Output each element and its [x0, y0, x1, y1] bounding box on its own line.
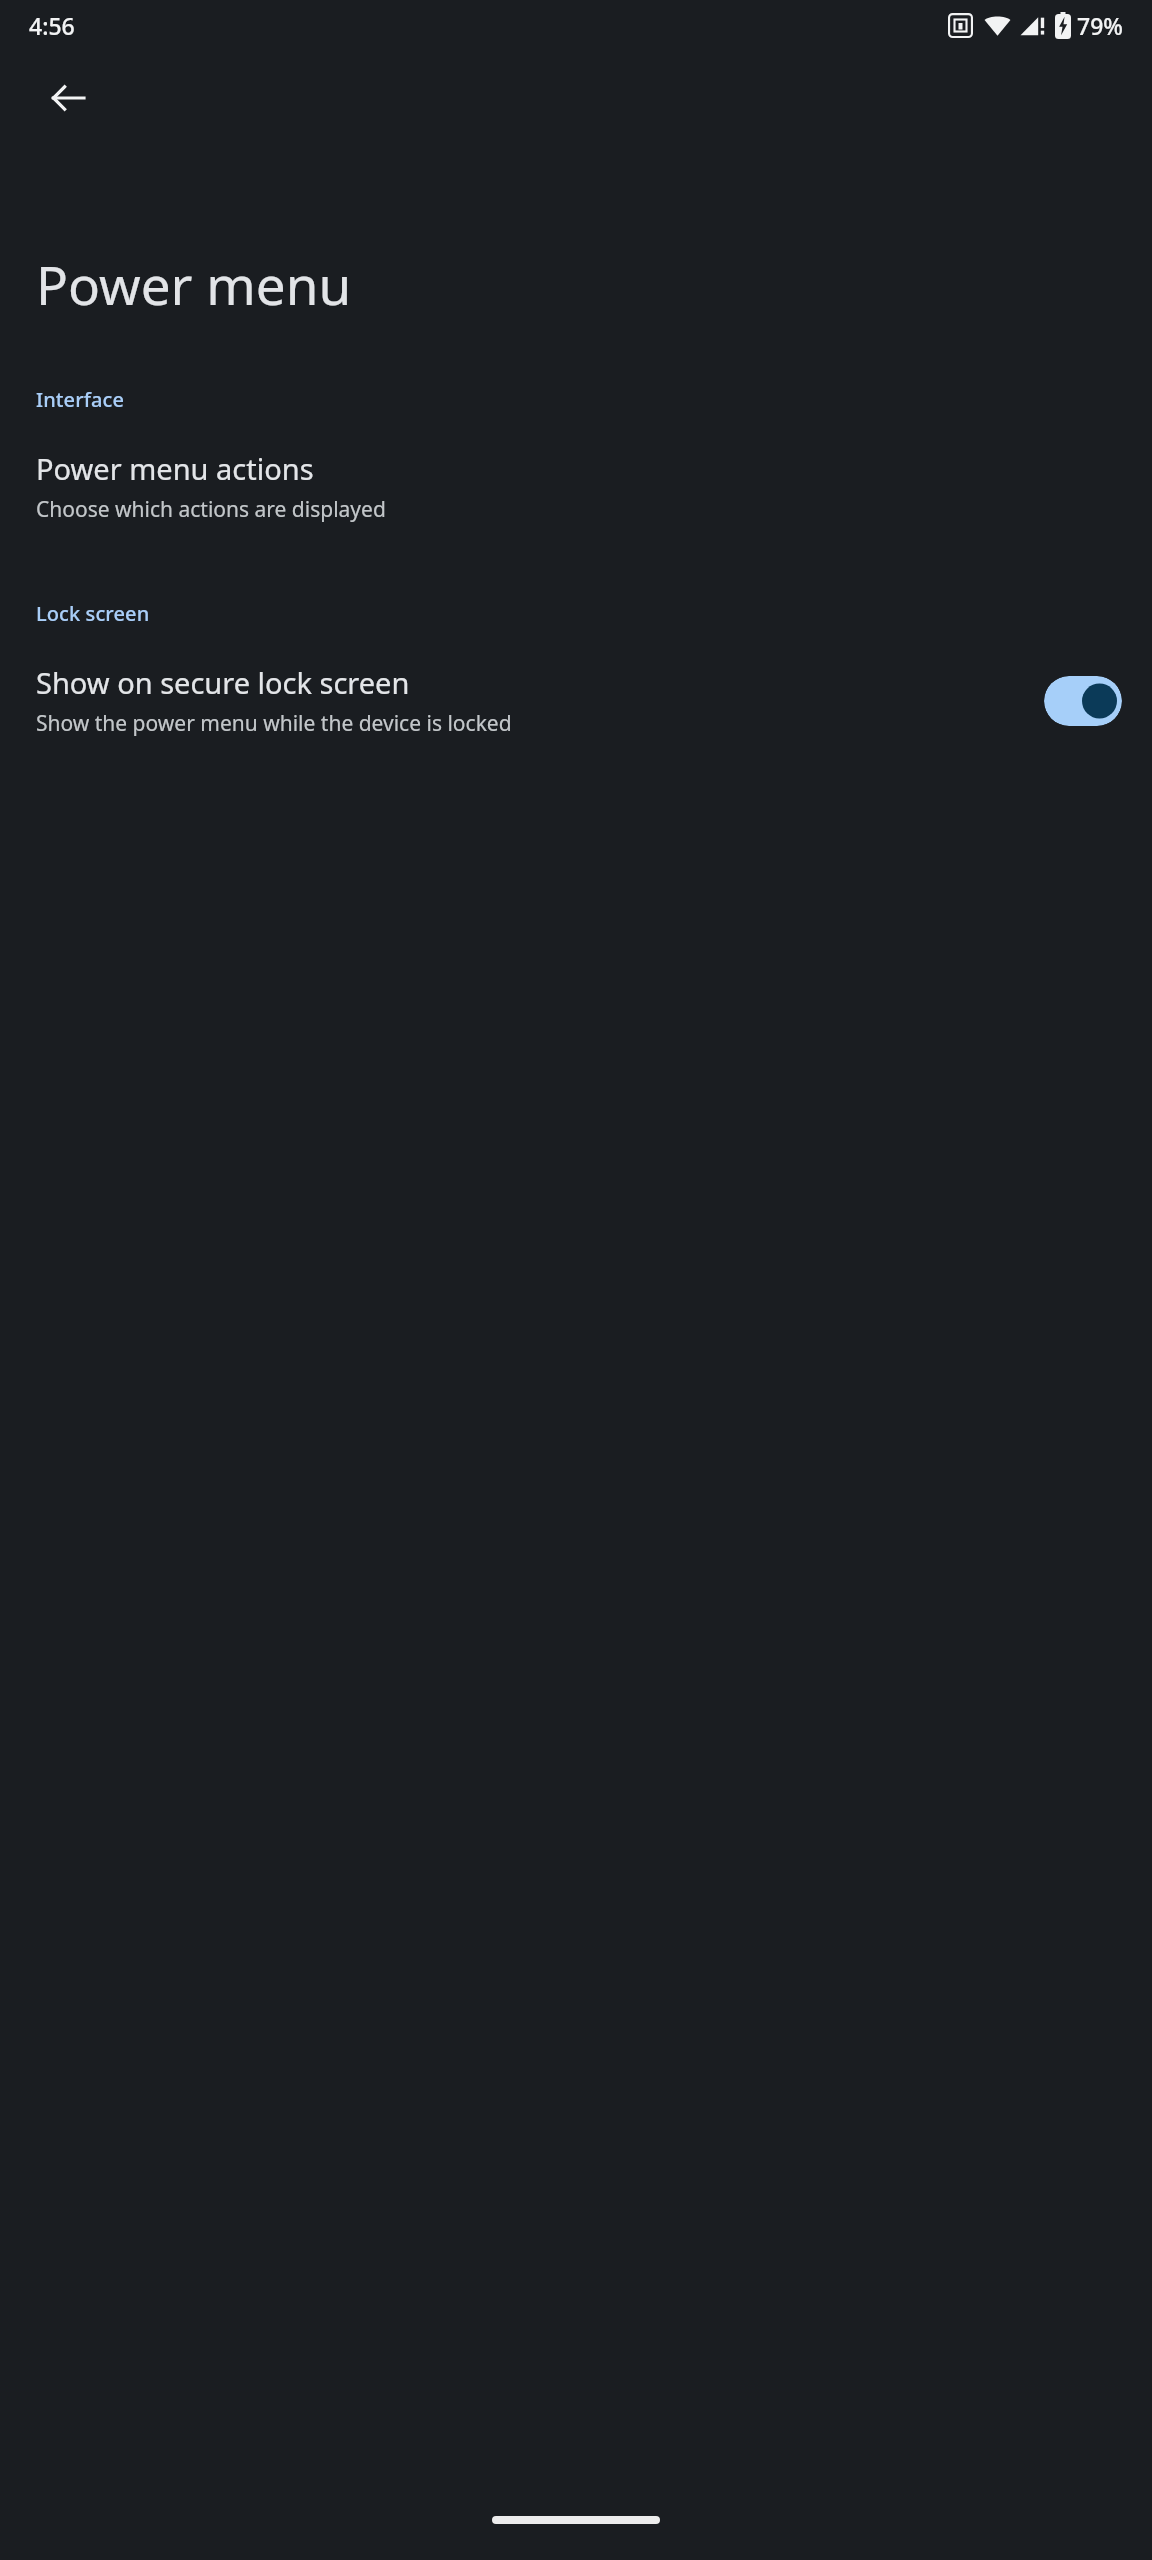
button[interactable]: Power menu actions	[0, 435, 1152, 538]
staticText: Show on secure lock screen	[36, 663, 410, 702]
button[interactable]: Show on secure lock screen toggle	[1044, 676, 1122, 726]
button[interactable]: Back	[30, 60, 106, 136]
staticText: Interface	[36, 386, 124, 413]
staticText: 4:56	[29, 10, 75, 41]
staticText: Power menu	[36, 248, 352, 320]
staticText: 79%	[1077, 10, 1123, 41]
staticText: Lock screen	[36, 600, 150, 627]
staticText: Choose which actions are displayed	[36, 495, 386, 524]
staticText: Show the power menu while the device is …	[36, 709, 512, 738]
button[interactable]: Show on secure lock screen	[0, 649, 1152, 752]
staticText: Power menu actions	[36, 449, 314, 488]
